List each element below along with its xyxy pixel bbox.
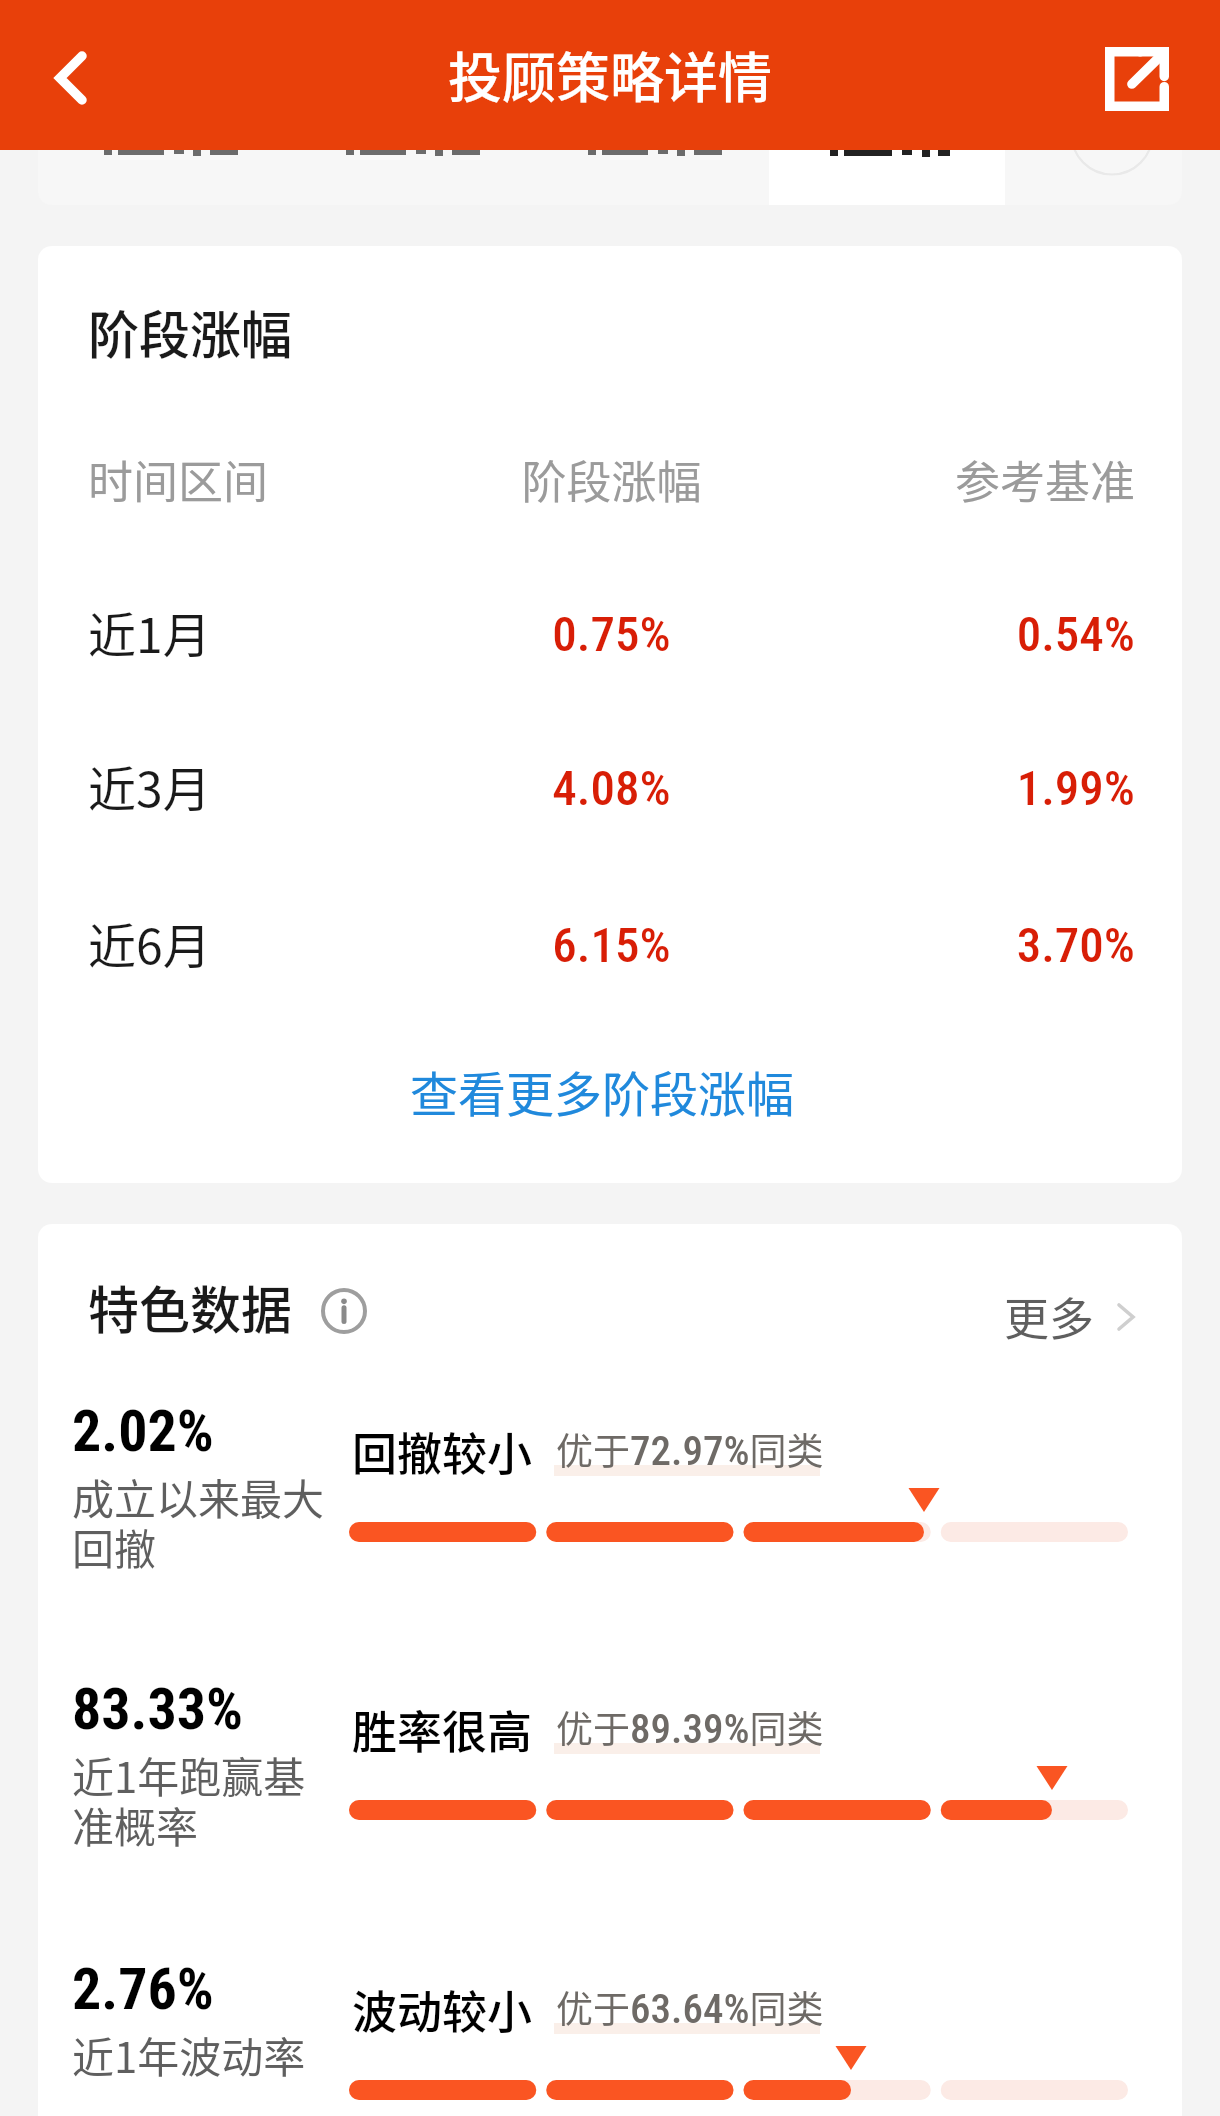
staticText: 0.54% [786,606,1135,663]
staticText: 阶段涨幅 [437,447,786,512]
staticText: 回撤较小 [352,1419,533,1484]
staticText: 6.15% [437,917,786,974]
staticText: 近1年跑赢基 准概率 [72,1744,306,1855]
staticText: 近6月 [88,908,437,978]
staticText: 参考基准 [786,447,1135,512]
staticText: 更多 [1004,1284,1095,1349]
staticText: 2.76% [72,1955,214,2023]
staticText: 近1月 [88,597,437,667]
staticText: 优于89.39%同类 [556,1700,824,1754]
staticText: 时间区间 [88,447,437,512]
staticText: 0.75% [437,606,786,663]
button[interactable]: Share [1105,47,1169,111]
staticText: 4.08% [437,760,786,817]
staticText: 优于72.97%同类 [556,1422,824,1476]
staticText: 投顾策略详情 [448,35,772,113]
staticText: 83.33% [72,1675,244,1743]
staticText: 近1年波动率 [72,2024,306,2085]
staticText: 阶段涨幅 [88,295,293,369]
staticText: 2.02% [72,1397,214,1465]
staticText: 1.99% [786,760,1135,817]
staticText: 查看更多阶段涨幅 [410,1056,795,1126]
button[interactable]: Info [321,1288,367,1334]
staticText: 3.70% [786,917,1135,974]
staticText: 优于63.64%同类 [556,1980,824,2034]
staticText: 波动较小 [352,1977,533,2042]
staticText: 成立以来最大 回撤 [72,1466,325,1577]
button[interactable]: 更多 [1004,1284,1135,1349]
button[interactable]: 查看更多阶段涨幅 [38,1036,1182,1146]
staticText: 胜率很高 [352,1697,533,1762]
button[interactable]: Back [24,31,112,119]
staticText: 特色数据 [88,1270,293,1344]
staticText: 近3月 [88,751,437,821]
